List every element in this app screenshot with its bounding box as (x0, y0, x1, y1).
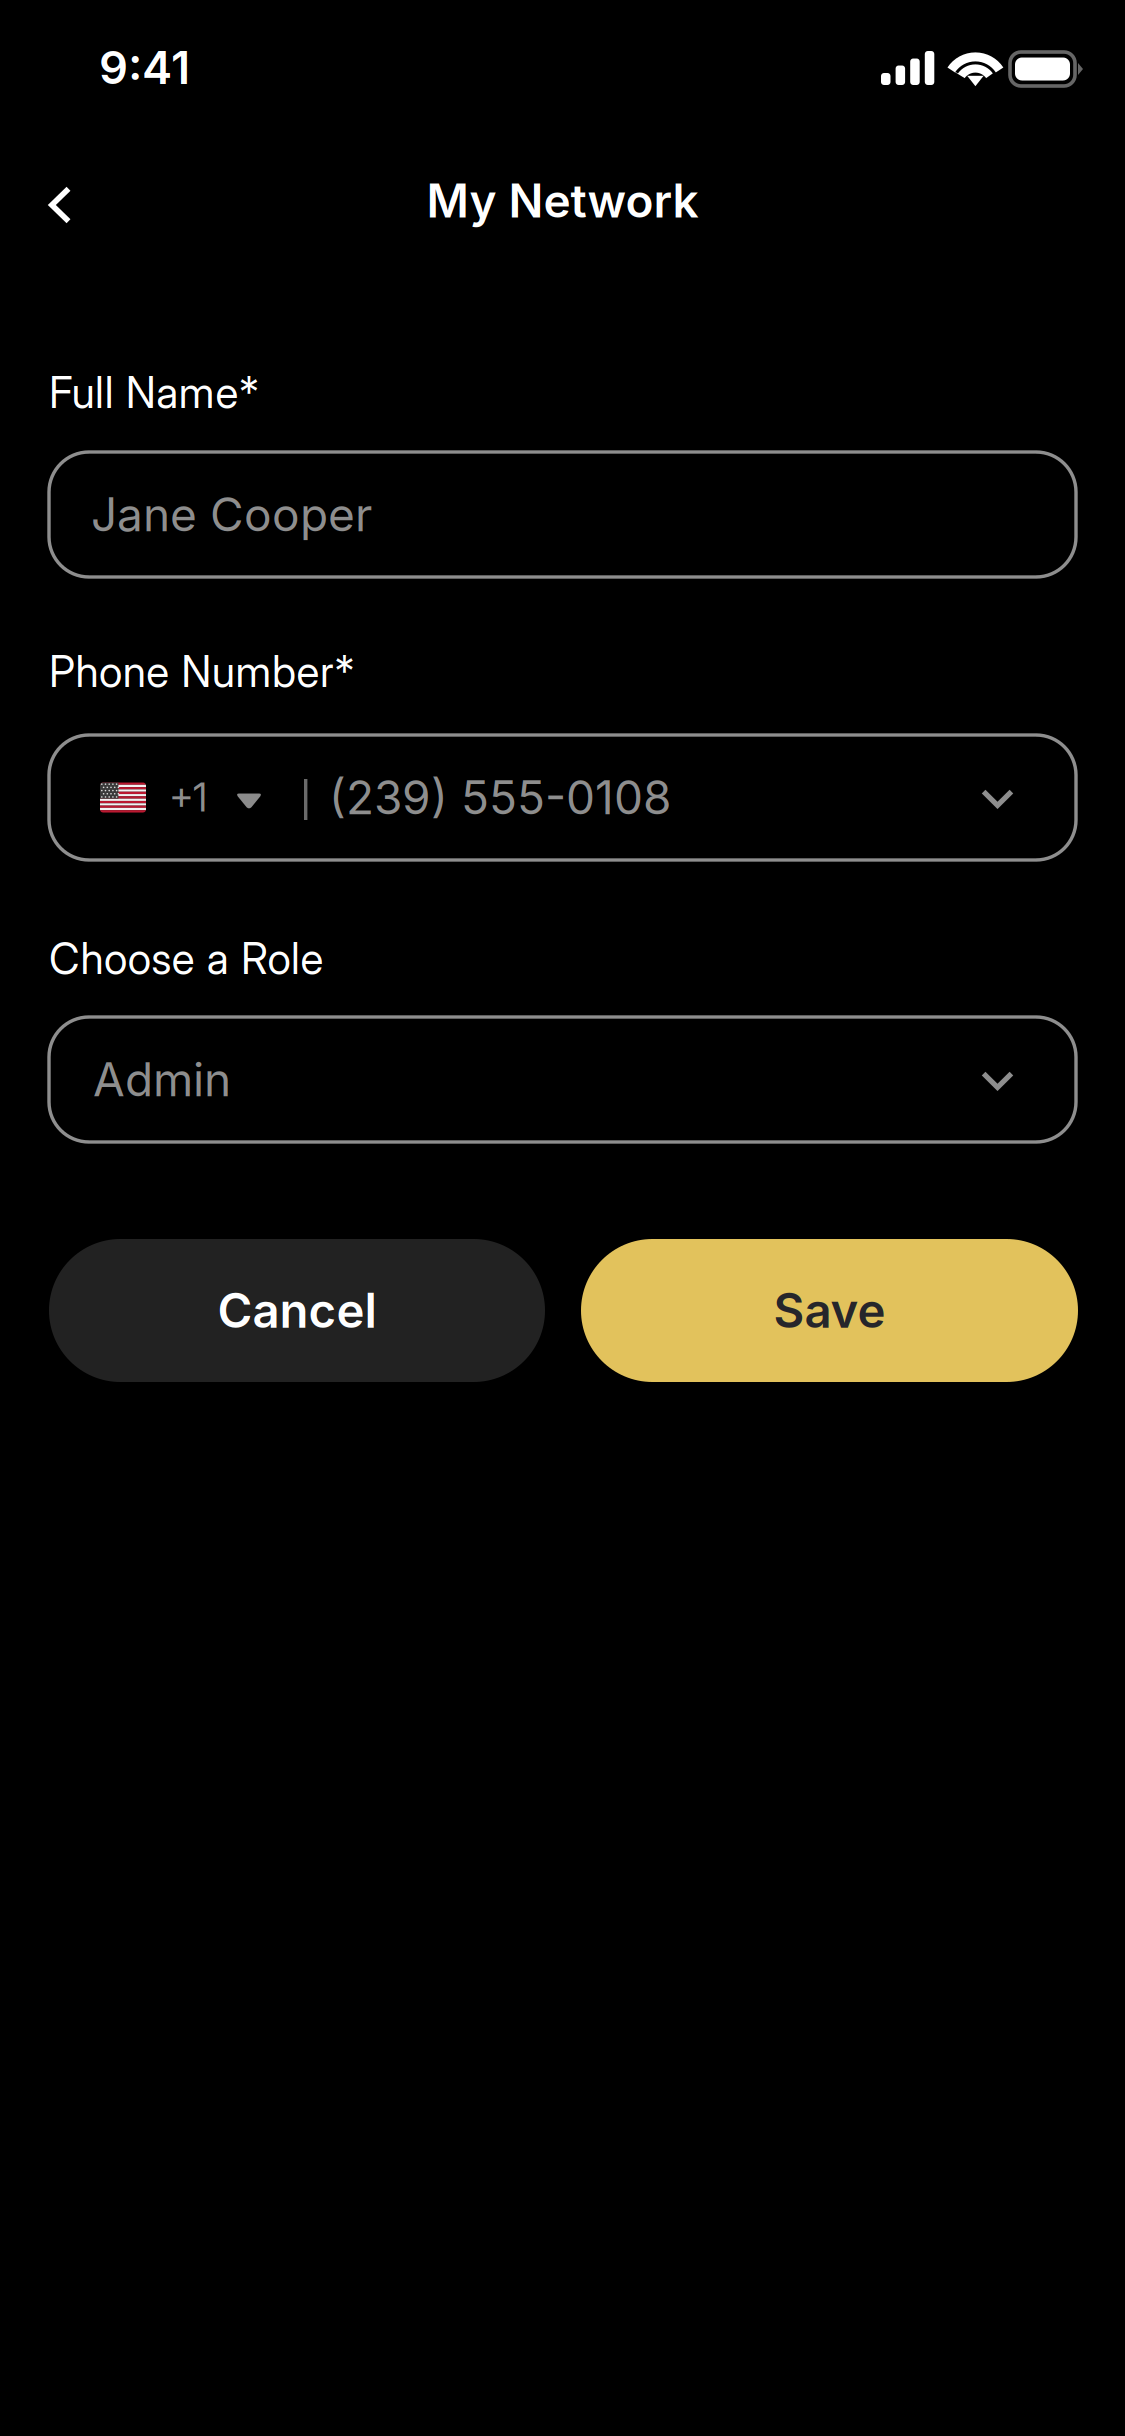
staticText: Phone Number* (49, 646, 355, 697)
button[interactable]: Cancel (49, 1239, 545, 1382)
button[interactable]: Admin (49, 1017, 1076, 1142)
button[interactable]: Back (5, 150, 115, 260)
staticText: Full Name* (49, 367, 259, 418)
staticText: Choose a Role (49, 933, 324, 984)
button[interactable]: Jane Cooper (49, 452, 1076, 577)
staticText: (239) 555-0108 (329, 770, 671, 825)
staticText: Admin (93, 1052, 231, 1107)
staticText: My Network (426, 173, 698, 229)
button[interactable]: +1 (49, 735, 1076, 860)
staticText: Jane Cooper (91, 487, 372, 542)
staticText: 9:41 (99, 40, 190, 95)
staticText: Save (773, 1282, 885, 1339)
staticText: Cancel (217, 1282, 376, 1339)
button[interactable]: Save (581, 1239, 1078, 1382)
staticText: +1 (169, 774, 207, 821)
